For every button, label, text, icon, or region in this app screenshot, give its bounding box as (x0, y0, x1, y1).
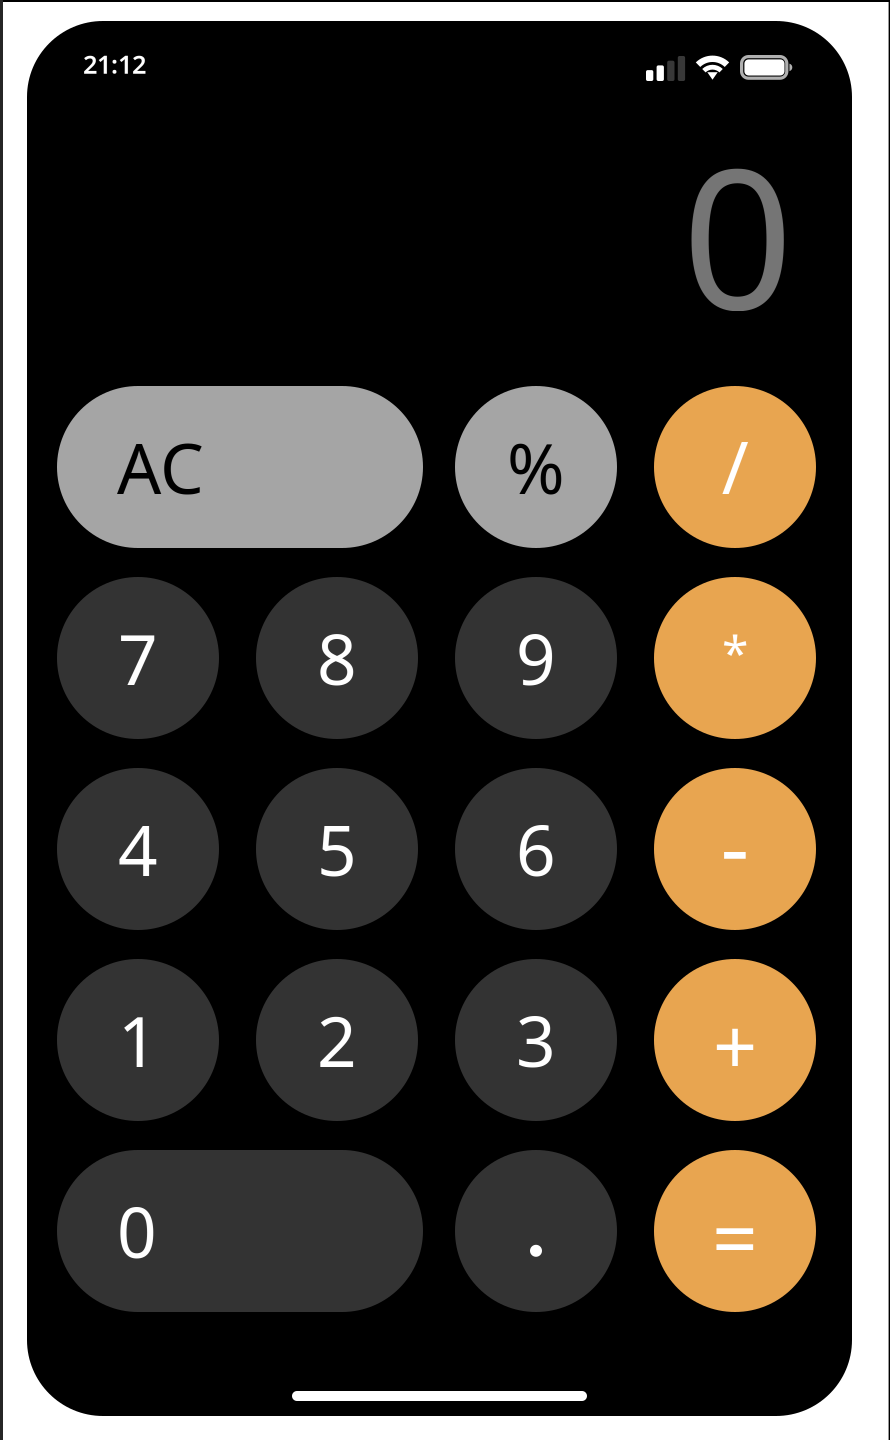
button[interactable]: 6 (455, 768, 617, 930)
button[interactable]: / (654, 386, 816, 548)
staticText: 21:12 (83, 47, 146, 81)
staticText: 3 (516, 994, 556, 1086)
staticText: % (507, 421, 565, 513)
staticText: 0 (117, 1185, 157, 1277)
staticText: 0 (682, 104, 793, 363)
staticText: 6 (516, 803, 556, 895)
staticText: * (722, 620, 748, 684)
button[interactable]: % (455, 386, 617, 548)
staticText: + (713, 994, 757, 1096)
staticText: 5 (317, 803, 357, 895)
staticText: / (721, 417, 748, 515)
button[interactable]: 8 (256, 577, 418, 739)
button[interactable]: 7 (57, 577, 219, 739)
button[interactable]: 2 (256, 959, 418, 1121)
button[interactable] (455, 1150, 617, 1312)
button[interactable]: AC (57, 386, 423, 548)
staticText: 8 (317, 612, 357, 704)
button[interactable]: 3 (455, 959, 617, 1121)
staticText: 1 (118, 994, 158, 1086)
staticText: 4 (118, 803, 158, 895)
button[interactable]: - (654, 768, 816, 930)
button[interactable]: = (654, 1150, 816, 1312)
staticText: - (720, 786, 749, 904)
button[interactable]: 1 (57, 959, 219, 1121)
staticText: 7 (118, 612, 158, 704)
staticText: 9 (516, 612, 556, 704)
button[interactable]: 4 (57, 768, 219, 930)
staticText: = (712, 1183, 758, 1289)
staticText: AC (117, 421, 204, 513)
button[interactable]: * (654, 577, 816, 739)
button[interactable]: 5 (256, 768, 418, 930)
button[interactable]: + (654, 959, 816, 1121)
staticText: 2 (317, 994, 357, 1086)
button[interactable]: 0 (57, 1150, 423, 1312)
button[interactable]: 9 (455, 577, 617, 739)
